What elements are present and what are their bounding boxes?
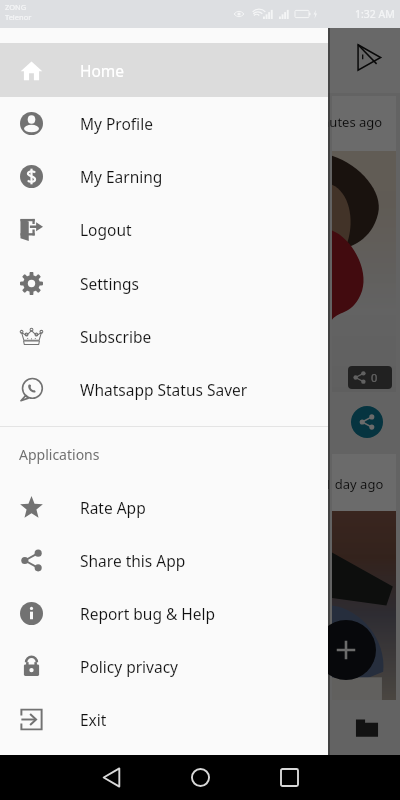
- button[interactable]: Share count: [348, 366, 392, 389]
- button[interactable]: Recents: [267, 755, 311, 800]
- staticText: 1:32 AM: [355, 7, 395, 21]
- button[interactable]: My Profile: [0, 97, 328, 149]
- button[interactable]: Home: [178, 755, 222, 800]
- staticText: Report bug & Help: [80, 603, 216, 624]
- button[interactable]: Share: [351, 406, 383, 438]
- button[interactable]: Rate App: [0, 481, 328, 533]
- staticText: Settings: [80, 273, 139, 294]
- button[interactable]: Report bug & Help: [0, 587, 328, 639]
- staticText: My Profile: [80, 113, 153, 134]
- button[interactable]: Exit: [0, 693, 328, 745]
- staticText: Subscribe: [80, 326, 152, 347]
- staticText: Home: [80, 60, 125, 81]
- button[interactable]: Settings: [0, 257, 328, 309]
- staticText: Logout: [80, 219, 132, 240]
- button[interactable]: Home: [0, 43, 328, 97]
- staticText: Telenor: [5, 12, 32, 22]
- staticText: Share this App: [80, 550, 186, 571]
- staticText: 0: [371, 370, 378, 385]
- button[interactable]: Subscribe: [0, 310, 328, 362]
- button[interactable]: Whatsapp Status Saver: [0, 363, 328, 415]
- staticText: Policy privacy: [80, 656, 178, 677]
- staticText: ZONG: [5, 2, 27, 12]
- button[interactable]: My Earning: [0, 150, 328, 202]
- staticText: Rate App: [80, 497, 146, 518]
- button[interactable]: Play Store: [354, 43, 383, 72]
- staticText: Applications: [19, 445, 100, 464]
- staticText: 2 minutes ago: [295, 113, 359, 131]
- staticText: Exit: [80, 709, 107, 730]
- staticText: Whatsapp Status Saver: [80, 379, 248, 400]
- button[interactable]: Logout: [0, 203, 328, 255]
- button[interactable]: Folder: [355, 717, 379, 741]
- button[interactable]: Back: [89, 755, 133, 800]
- button[interactable]: Share this App: [0, 534, 328, 586]
- staticText: My Earning: [80, 166, 163, 187]
- button[interactable]: Policy privacy: [0, 640, 328, 692]
- staticText: 1 day ago: [324, 475, 384, 493]
- button[interactable]: Add: [316, 620, 376, 680]
